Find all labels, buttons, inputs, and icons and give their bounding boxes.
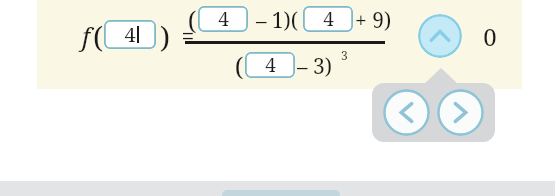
staticText: 4 <box>323 6 334 32</box>
button[interactable]: Previous <box>383 89 430 136</box>
staticText: = <box>175 20 201 50</box>
staticText: 0 <box>476 20 504 52</box>
staticText: – 1)( <box>250 6 304 34</box>
staticText: ( <box>232 49 246 81</box>
button[interactable]: Next <box>437 89 484 136</box>
staticText: 4 <box>218 6 229 32</box>
button[interactable]: 4 <box>303 6 353 32</box>
staticText: – 3) <box>297 52 345 80</box>
staticText: 4 <box>124 21 136 48</box>
staticText: + 9) <box>355 6 405 34</box>
button[interactable]: Expand <box>418 14 462 58</box>
staticText: 4 <box>265 52 276 78</box>
button[interactable]: 4 <box>245 52 295 78</box>
button[interactable]: 4 <box>104 20 156 49</box>
staticText: ( <box>185 3 199 35</box>
button[interactable]: 4 <box>198 6 248 32</box>
staticText: ) <box>157 17 173 53</box>
staticText: ( <box>90 17 106 53</box>
staticText: 3 <box>341 47 355 65</box>
staticText: f <box>76 19 96 53</box>
